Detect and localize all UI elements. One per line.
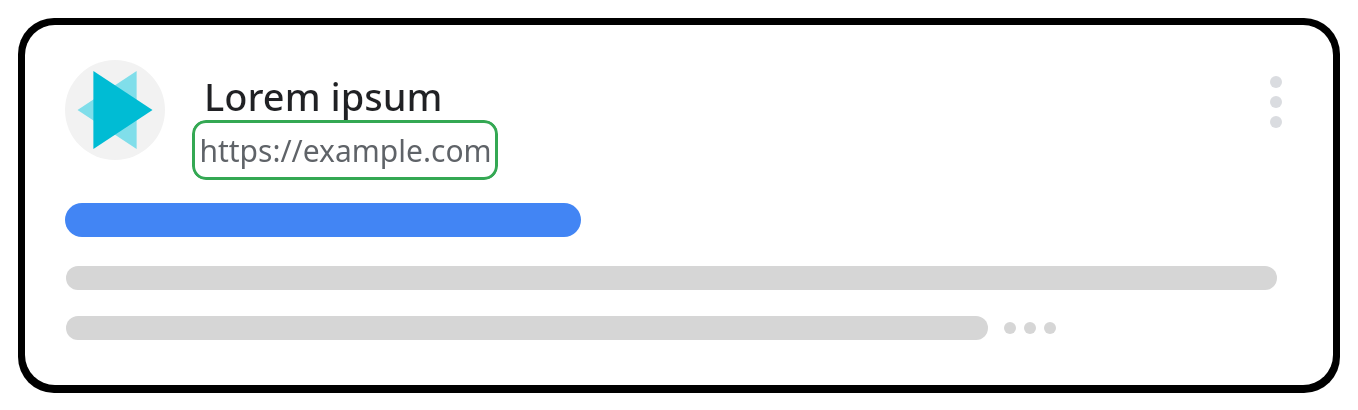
button[interactable]: https://example.com <box>192 120 498 180</box>
staticText: https://example.com <box>199 130 492 171</box>
button[interactable]: App icon <box>65 60 165 160</box>
button[interactable]: More options <box>1253 60 1299 130</box>
button[interactable] <box>65 203 581 237</box>
staticText: Lorem ipsum <box>204 70 443 122</box>
